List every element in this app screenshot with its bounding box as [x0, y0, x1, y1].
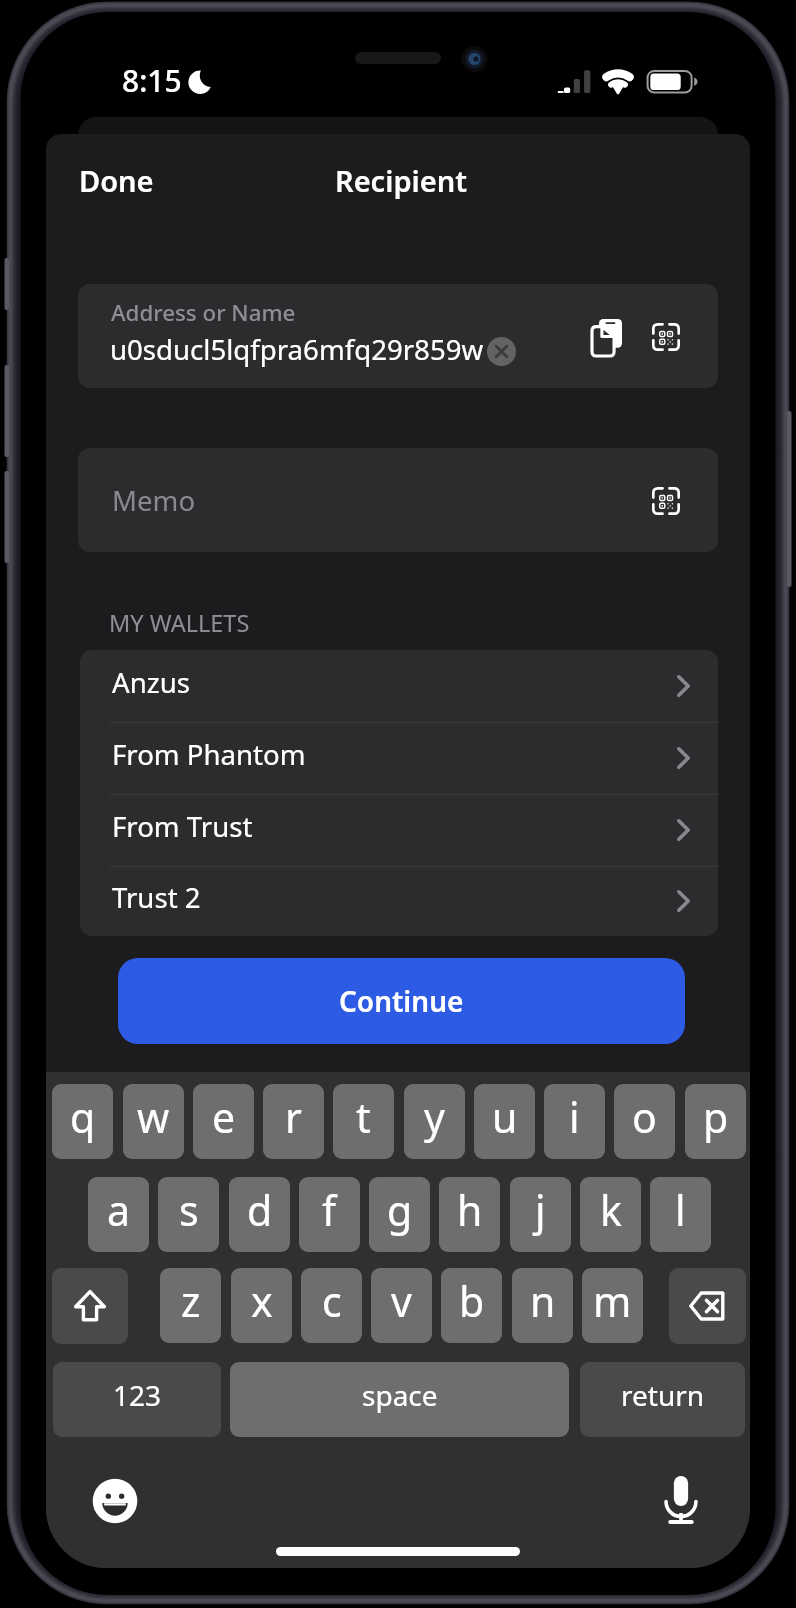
button[interactable]: From Phantom [80, 722, 718, 794]
button[interactable]: Paste [592, 319, 622, 356]
button[interactable]: w [123, 1084, 184, 1159]
staticText: Memo [112, 481, 196, 519]
staticText: 8:15 [122, 60, 182, 101]
staticText: s [179, 1182, 199, 1238]
staticText: p [703, 1089, 729, 1145]
staticText: MY WALLETS [109, 607, 250, 639]
button[interactable]: s [158, 1177, 219, 1252]
staticText: a [107, 1182, 131, 1238]
staticText: t [356, 1089, 371, 1145]
staticText: r [285, 1089, 302, 1145]
button[interactable]: m [582, 1268, 643, 1343]
staticText: Trust 2 [112, 878, 201, 916]
staticText: q [70, 1089, 96, 1145]
staticText: Continue [339, 982, 464, 1020]
button[interactable]: t [333, 1084, 394, 1159]
button[interactable]: g [369, 1177, 430, 1252]
button[interactable]: q [52, 1084, 113, 1159]
button[interactable]: l [650, 1177, 711, 1252]
button[interactable]: d [229, 1177, 290, 1252]
button[interactable]: Backspace [669, 1268, 746, 1344]
staticText: h [457, 1182, 483, 1238]
button[interactable]: c [301, 1268, 362, 1343]
staticText: o [632, 1089, 657, 1145]
button[interactable]: x [231, 1268, 292, 1343]
button[interactable]: o [614, 1084, 675, 1159]
staticText: e [212, 1089, 236, 1145]
staticText: z [181, 1273, 201, 1329]
button[interactable]: u [474, 1084, 535, 1159]
staticText: Anzus [112, 663, 190, 701]
staticText: u [492, 1089, 518, 1145]
button[interactable]: b [441, 1268, 502, 1343]
staticText: g [387, 1182, 413, 1238]
button[interactable]: e [193, 1084, 254, 1159]
button[interactable]: Emoji keyboard [92, 1478, 138, 1524]
button[interactable]: Done [68, 157, 172, 203]
button[interactable]: return [580, 1362, 745, 1437]
button[interactable]: i [544, 1084, 605, 1159]
button[interactable]: Scan QR code [652, 323, 680, 351]
button[interactable]: n [512, 1268, 573, 1343]
staticText: 123 [113, 1376, 162, 1414]
staticText: v [391, 1273, 412, 1329]
staticText: l [675, 1182, 686, 1238]
staticText: d [247, 1182, 273, 1238]
staticText: return [621, 1376, 705, 1414]
button[interactable]: h [439, 1177, 500, 1252]
button[interactable]: Dictation [658, 1475, 704, 1525]
button[interactable]: k [580, 1177, 641, 1252]
button[interactable]: j [510, 1177, 571, 1252]
button[interactable]: Shift [52, 1268, 128, 1344]
staticText: k [600, 1182, 622, 1238]
button[interactable]: Anzus [80, 650, 718, 722]
staticText: c [322, 1273, 342, 1329]
staticText: y [424, 1089, 445, 1145]
staticText: Address or Name [111, 297, 296, 327]
button[interactable]: Scan QR code for memo [652, 487, 680, 515]
button[interactable]: z [160, 1268, 221, 1343]
button[interactable]: r [263, 1084, 324, 1159]
button[interactable]: Memo [78, 448, 718, 552]
staticText: i [569, 1089, 580, 1145]
button[interactable]: Clear address [487, 337, 516, 366]
staticText: From Trust [112, 807, 253, 845]
button[interactable]: y [404, 1084, 465, 1159]
staticText: m [593, 1273, 632, 1329]
staticText: x [251, 1273, 273, 1329]
staticText: space [362, 1376, 438, 1414]
button[interactable]: Continue [118, 958, 685, 1044]
staticText: b [459, 1273, 485, 1329]
button[interactable]: a [88, 1177, 149, 1252]
staticText: Done [79, 161, 154, 200]
staticText: From Phantom [112, 735, 306, 773]
staticText: w [137, 1089, 170, 1145]
button[interactable]: p [685, 1084, 746, 1159]
staticText: u0sducl5lqfpra6mfq29r859w [110, 330, 484, 368]
staticText: j [535, 1182, 546, 1238]
staticText: Recipient [335, 161, 467, 200]
button[interactable]: Trust 2 [80, 866, 718, 936]
button[interactable]: From Trust [80, 794, 718, 866]
button[interactable]: f [299, 1177, 360, 1252]
button[interactable]: v [371, 1268, 432, 1343]
button[interactable]: space [230, 1362, 569, 1437]
button[interactable]: 123 [53, 1362, 221, 1437]
staticText: f [322, 1182, 337, 1238]
staticText: n [530, 1273, 556, 1329]
